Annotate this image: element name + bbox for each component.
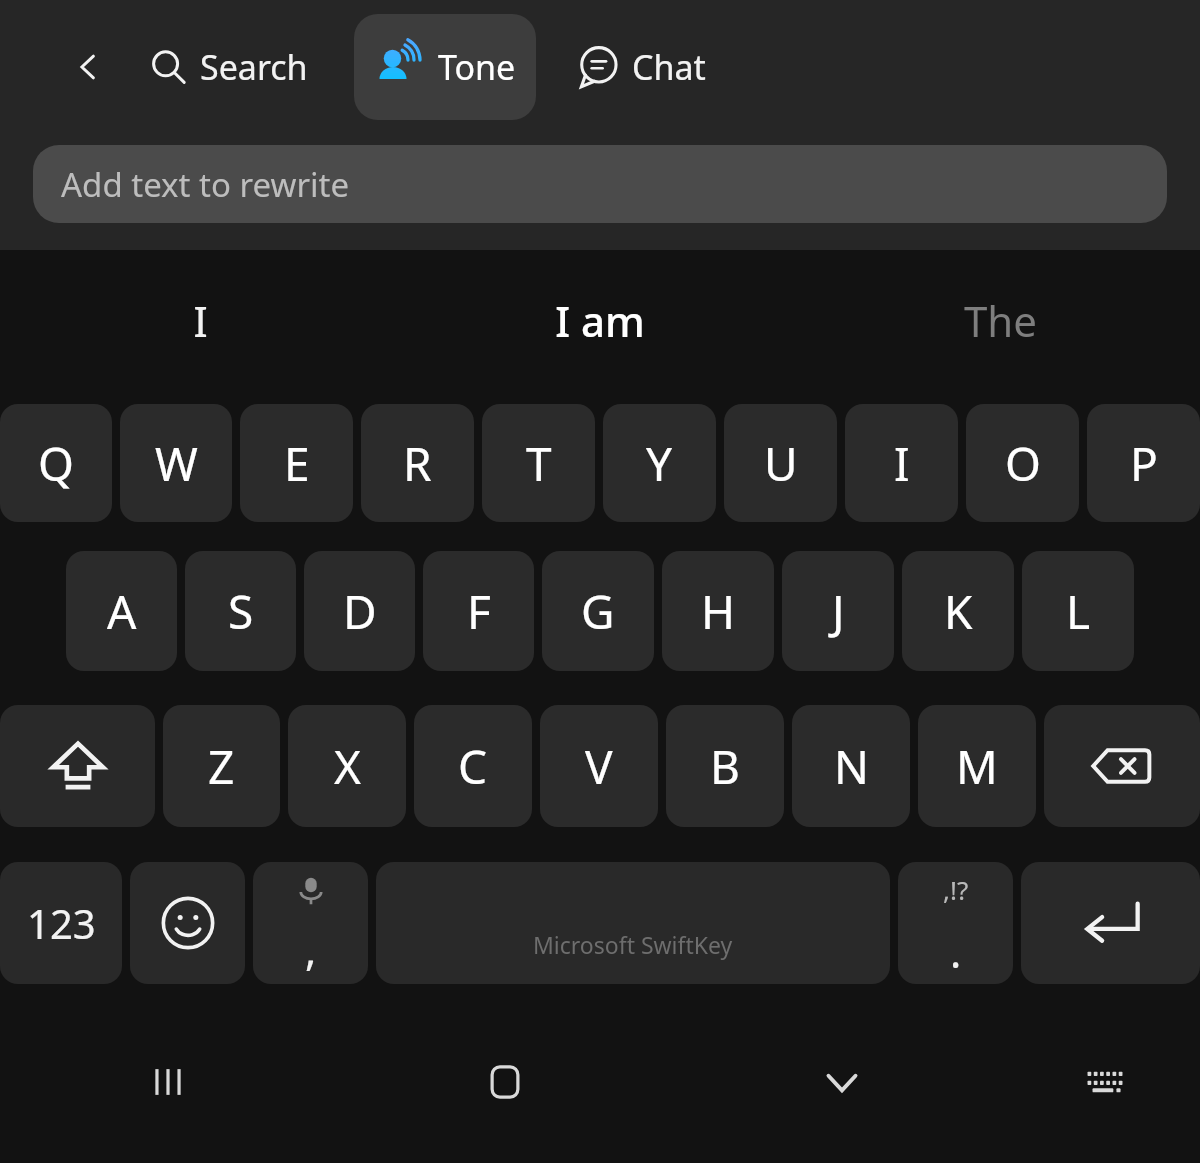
button[interactable]: R — [361, 404, 474, 522]
button[interactable]: A — [66, 551, 177, 671]
staticText: A — [107, 580, 137, 643]
staticText: Chat — [632, 44, 706, 90]
staticText: T — [526, 432, 552, 495]
staticText: B — [710, 735, 740, 798]
staticText: S — [228, 580, 254, 643]
button[interactable]: M — [918, 705, 1036, 827]
button[interactable]: Enter — [1021, 862, 1200, 984]
button[interactable]: I — [0, 250, 400, 390]
staticText: C — [458, 735, 488, 798]
button[interactable]: Shift — [0, 705, 155, 827]
button[interactable]: L — [1022, 551, 1134, 671]
staticText: I — [894, 432, 910, 495]
button[interactable]: Add text to rewrite — [33, 145, 1167, 223]
button[interactable]: 123 — [0, 862, 122, 984]
staticText: J — [832, 580, 845, 643]
button[interactable]: J — [782, 551, 894, 671]
staticText: F — [467, 580, 491, 643]
button[interactable]: G — [542, 551, 654, 671]
staticText: Q — [38, 432, 74, 495]
button[interactable]: Y — [603, 404, 716, 522]
button[interactable]: Z — [163, 705, 280, 827]
button[interactable]: C — [414, 705, 532, 827]
button[interactable]: U — [724, 404, 837, 522]
button[interactable]: Chat — [570, 34, 712, 100]
staticText: Microsoft SwiftKey — [533, 929, 733, 960]
staticText: , — [305, 921, 317, 978]
button[interactable]: The — [800, 250, 1200, 390]
staticText: M — [956, 735, 998, 798]
staticText: R — [403, 432, 432, 495]
button[interactable]: B — [666, 705, 784, 827]
staticText: W — [155, 432, 198, 495]
staticText: L — [1066, 580, 1091, 643]
staticText: 123 — [27, 896, 96, 950]
staticText: P — [1130, 432, 1158, 495]
button[interactable]: Period and punctuation — [898, 862, 1013, 984]
staticText: Search — [200, 44, 308, 90]
button[interactable]: E — [240, 404, 353, 522]
button[interactable]: K — [902, 551, 1014, 671]
button[interactable]: D — [304, 551, 415, 671]
staticText: O — [1005, 432, 1041, 495]
staticText: X — [334, 735, 361, 798]
button[interactable]: F — [423, 551, 534, 671]
staticText: Tone — [438, 44, 516, 90]
staticText: K — [944, 580, 973, 643]
staticText: U — [764, 432, 798, 495]
button[interactable]: Switch keyboard — [1055, 1032, 1155, 1132]
button[interactable]: Emoji — [130, 862, 245, 984]
button[interactable]: V — [540, 705, 658, 827]
staticText: Add text to rewrite — [61, 162, 350, 207]
button[interactable]: Back — [58, 29, 118, 105]
button[interactable]: I am — [400, 250, 800, 390]
button[interactable]: S — [185, 551, 296, 671]
button[interactable]: N — [792, 705, 910, 827]
button[interactable]: Recents — [113, 1032, 223, 1132]
button[interactable]: Q — [0, 404, 112, 522]
staticText: E — [284, 432, 310, 495]
button[interactable]: H — [662, 551, 774, 671]
staticText: V — [585, 735, 613, 798]
button[interactable]: Hide keyboard — [787, 1032, 897, 1132]
staticText: . — [950, 923, 962, 980]
button[interactable]: Search — [142, 34, 314, 100]
staticText: Z — [208, 735, 235, 798]
button[interactable]: I — [845, 404, 958, 522]
staticText: G — [581, 580, 615, 643]
staticText: Y — [646, 432, 673, 495]
staticText: I — [193, 292, 208, 349]
staticText: H — [701, 580, 736, 643]
button[interactable]: Tone — [354, 14, 536, 120]
button[interactable]: Comma, voice input — [253, 862, 368, 984]
staticText: I am — [555, 292, 645, 349]
button[interactable]: W — [120, 404, 232, 522]
staticText: ,!? — [943, 872, 969, 907]
staticText: D — [343, 580, 377, 643]
staticText: N — [834, 735, 869, 798]
staticText: The — [964, 292, 1037, 349]
button[interactable]: X — [288, 705, 406, 827]
button[interactable]: O — [966, 404, 1079, 522]
button[interactable]: Backspace — [1044, 705, 1200, 827]
button[interactable]: P — [1087, 404, 1200, 522]
button[interactable]: Space — [376, 862, 890, 984]
button[interactable]: Home — [450, 1032, 560, 1132]
button[interactable]: T — [482, 404, 595, 522]
